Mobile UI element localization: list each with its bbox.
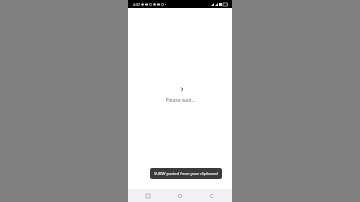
staticText: 4:02 [133,2,140,7]
staticText: SUBW pasted from your clipboard [154,171,218,176]
staticText: Please wait… [165,97,196,104]
button[interactable]: SUBW pasted from your clipboard [150,168,222,179]
button[interactable]: Recent apps [136,189,160,202]
button[interactable]: Back [200,189,224,202]
button[interactable]: Home [168,189,192,202]
